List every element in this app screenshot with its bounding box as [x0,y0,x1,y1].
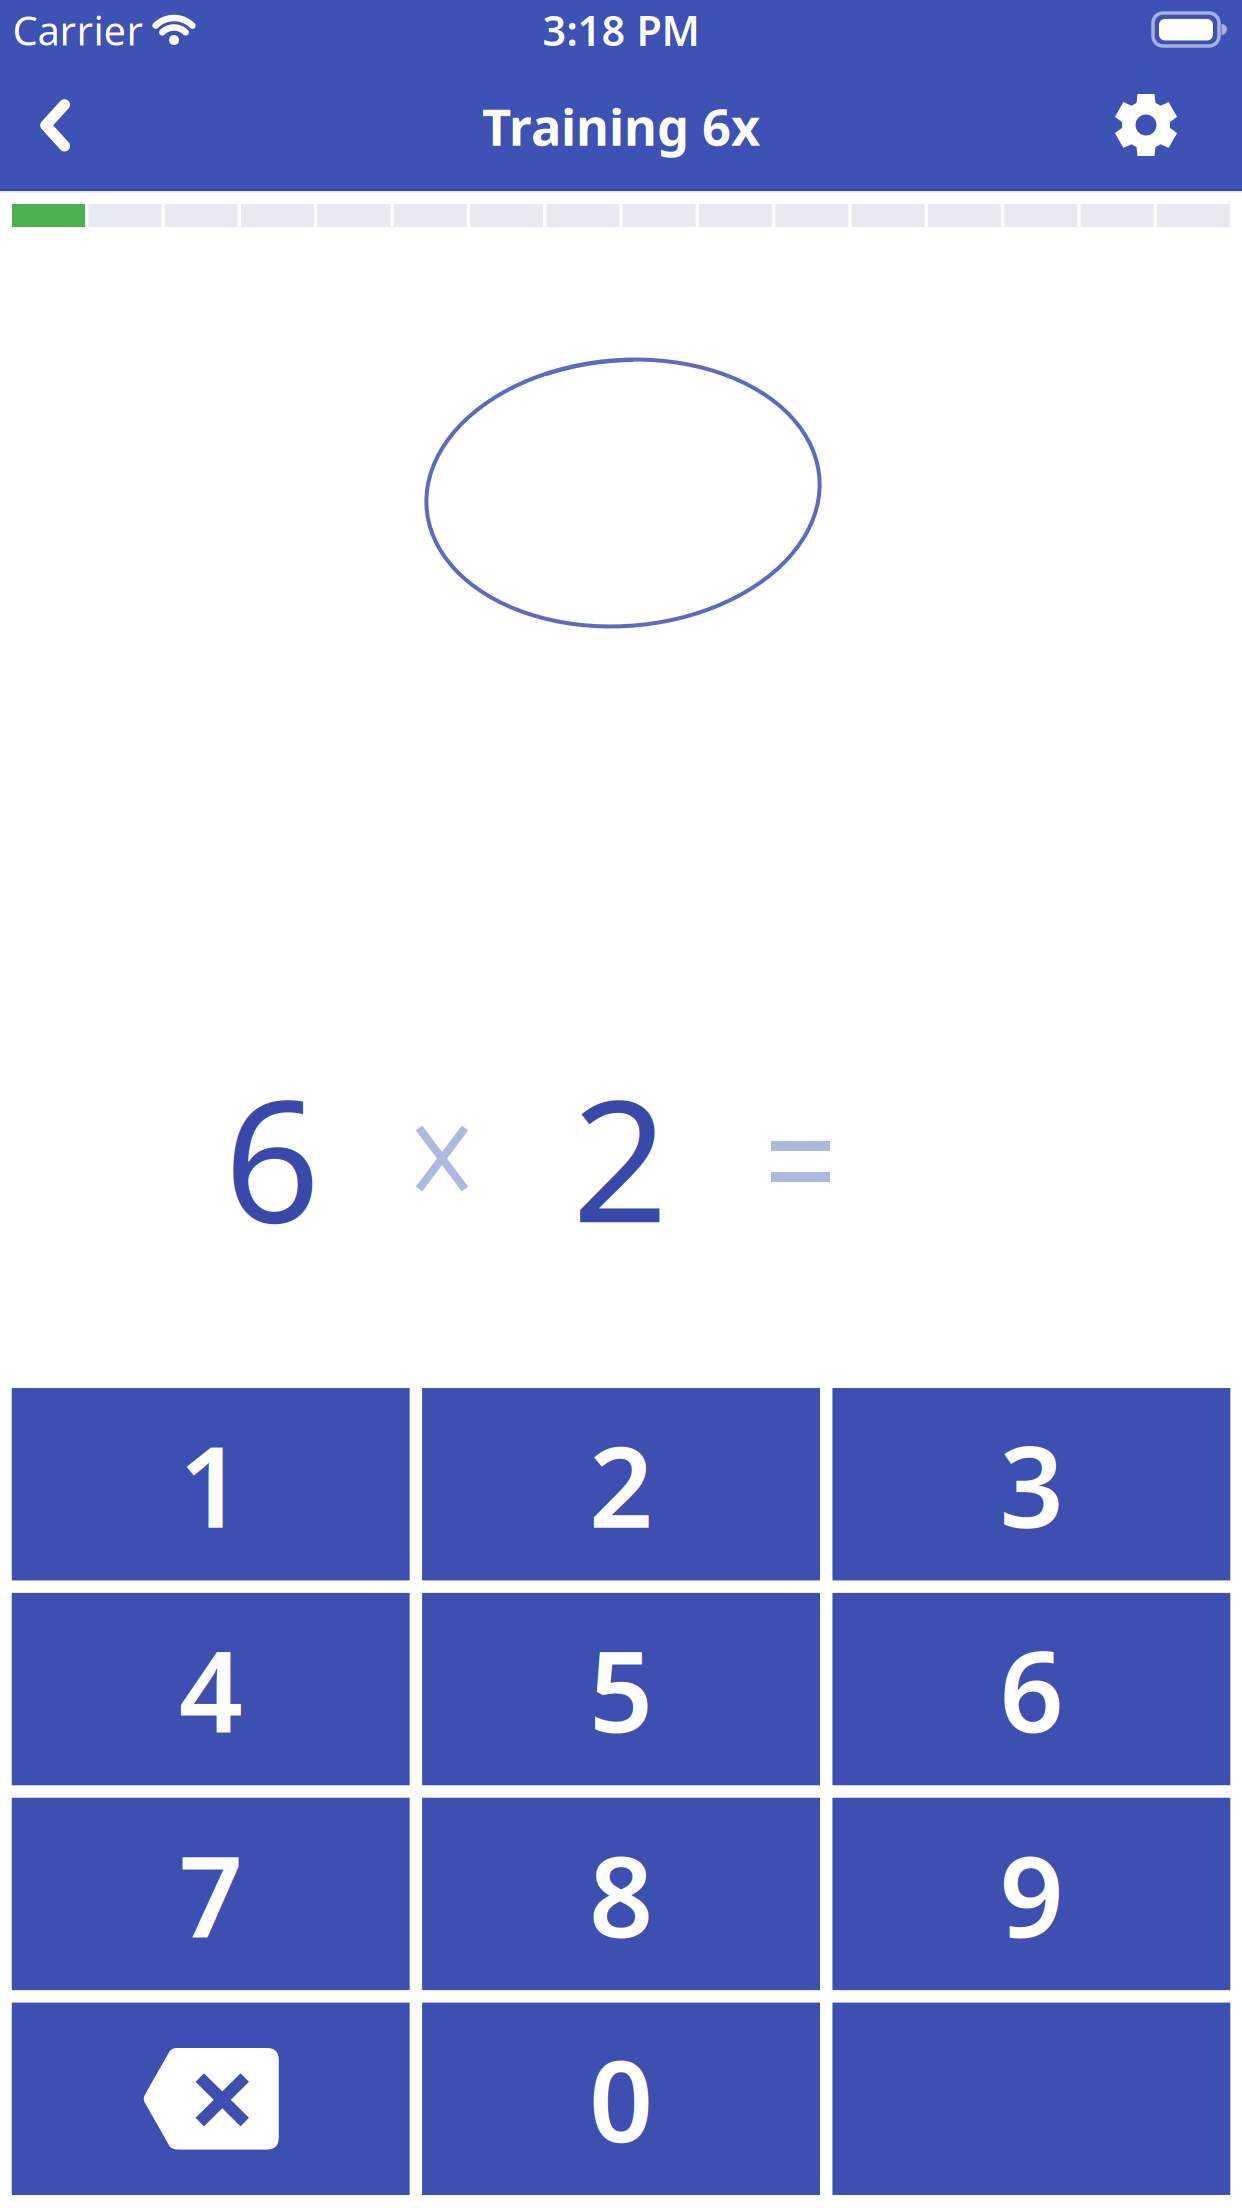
button[interactable]: 2 [422,1388,820,1580]
button[interactable]: 9 [832,1798,1230,1990]
button[interactable]: 3 [832,1388,1230,1580]
button[interactable]: 5 [422,1593,820,1785]
staticText: 6 [224,1045,320,1269]
staticText: 2 [589,1410,653,1559]
button[interactable]: Delete [12,2003,410,2195]
staticText: 8 [589,1820,653,1968]
staticText: 2 [572,1045,668,1269]
button[interactable]: 7 [12,1798,410,1990]
button[interactable]: 1 [12,1388,410,1580]
button[interactable]: 6 [832,1593,1230,1785]
staticText: 9 [999,1820,1063,1968]
button[interactable]: Back [24,89,88,161]
staticText: 1 [179,1410,243,1559]
button[interactable]: 8 [422,1798,820,1990]
staticText: 7 [179,1820,243,1968]
staticText: Training 6x [482,92,760,160]
staticText: Carrier [12,3,143,56]
staticText: 4 [179,1615,243,1763]
staticText: 3 [999,1410,1063,1559]
button[interactable]: Settings [1113,92,1179,158]
staticText: 0 [589,2024,653,2173]
staticText: 5 [589,1615,653,1763]
button[interactable]: 0 [422,2003,820,2195]
staticText: 6 [999,1615,1063,1763]
button[interactable]: 4 [12,1593,410,1785]
staticText: 3:18 PM [542,3,699,57]
